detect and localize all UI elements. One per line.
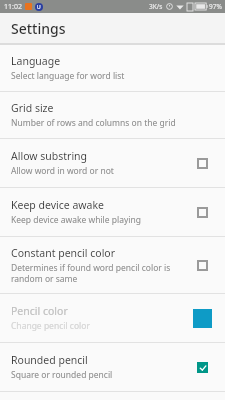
staticText: 97%	[209, 2, 222, 11]
other: Toggle off	[197, 158, 208, 169]
staticText: Rounded pencil	[11, 353, 88, 367]
staticText: 11:02	[4, 2, 22, 12]
staticText: Keep device awake	[11, 198, 104, 212]
other: Toggle off	[197, 207, 208, 218]
button[interactable]: Language	[0, 45, 225, 91]
button[interactable]: Constant pencil color	[0, 237, 225, 293]
staticText: Pencil color	[11, 304, 68, 318]
staticText: Select language for word list	[11, 70, 125, 82]
staticText: Number of rows and columns on the grid	[11, 117, 176, 129]
button[interactable]: Keep device awake	[0, 188, 225, 236]
staticText: Determines if found word pencil color is…	[11, 262, 181, 284]
button[interactable]: Toggle off	[187, 148, 217, 178]
button[interactable]: Toggle off	[187, 250, 217, 280]
button[interactable]: Grid size	[0, 92, 225, 138]
button[interactable]: Pencil color swatch	[187, 303, 217, 333]
staticText: Change pencil color	[11, 320, 90, 332]
button[interactable]: Pencil color	[0, 294, 225, 342]
staticText: Allow substring	[11, 149, 88, 163]
staticText: Grid size	[11, 101, 54, 115]
other: Toggle off	[197, 260, 208, 271]
staticText: 3K/s	[149, 2, 163, 11]
staticText: Language	[11, 54, 61, 68]
button[interactable]: Toggle off	[187, 197, 217, 227]
button[interactable]: Rounded pencil	[0, 343, 225, 391]
staticText: Keep device awake while playing	[11, 214, 142, 226]
button[interactable]: Toggle on	[187, 352, 217, 382]
staticText: Allow word in word or not	[11, 165, 114, 177]
staticText: Square or rounded pencil	[11, 369, 113, 381]
button[interactable]: Allow substring	[0, 139, 225, 187]
other: Toggle on	[197, 362, 208, 373]
staticText: Settings	[11, 19, 66, 38]
staticText: U	[37, 4, 41, 11]
staticText: Constant pencil color	[11, 246, 116, 260]
